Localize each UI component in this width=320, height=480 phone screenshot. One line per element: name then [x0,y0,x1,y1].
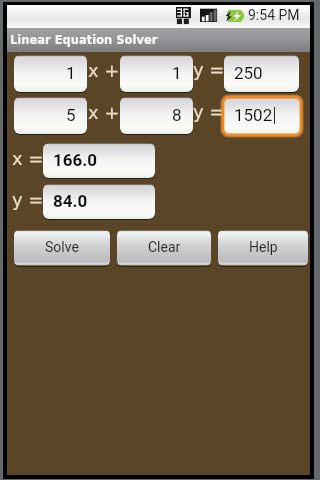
staticText: Solve [45,239,79,255]
staticText: 5 [66,105,76,125]
other: Battery charging [225,10,244,22]
button[interactable]: Solve [14,230,110,266]
other: Signal strength [200,8,218,22]
other: 3G network [176,7,193,25]
staticText: 84.0 [53,191,88,211]
button[interactable]: 8 [120,97,193,134]
staticText: 9:54 PM [248,7,300,23]
button[interactable]: 1502 [223,97,301,135]
staticText: 1502 [234,105,273,125]
staticText: x + [88,60,120,81]
staticText: y = [12,189,44,210]
button[interactable]: 1 [120,55,193,92]
button[interactable]: Clear [117,230,211,266]
button[interactable]: 166.0 [43,143,155,178]
staticText: 1 [66,63,76,83]
staticText: 250 [234,63,263,83]
staticText: 1 [172,63,182,83]
button[interactable]: 5 [14,97,87,134]
staticText: y = [193,59,225,80]
staticText: 8 [172,105,182,125]
button[interactable]: 250 [224,55,299,92]
staticText: 166.0 [53,150,97,170]
button[interactable]: 84.0 [43,184,155,219]
button[interactable]: 1 [14,55,87,92]
staticText: x + [88,102,120,123]
staticText: Linear Equation Solver [10,33,158,46]
staticText: Clear [148,239,181,255]
staticText: Help [249,239,278,255]
staticText: x = [12,148,44,169]
button[interactable]: Help [218,230,308,266]
staticText: y = [193,101,225,122]
